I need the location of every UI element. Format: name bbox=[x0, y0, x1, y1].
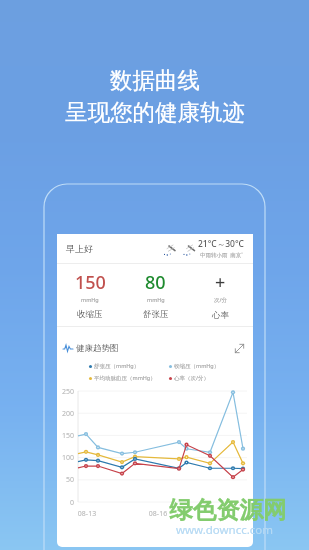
staticText: 250 bbox=[57, 387, 74, 397]
staticText: 50 bbox=[57, 475, 74, 485]
staticText: 健康趋势图 bbox=[76, 343, 119, 354]
staticText: www.downcc.com bbox=[176, 522, 274, 538]
staticText: 心率 bbox=[212, 310, 229, 321]
staticText: 平均动脉血压（mmHg） bbox=[94, 374, 156, 382]
staticText: 收缩压（mmHg） bbox=[174, 362, 220, 370]
staticText: 150 bbox=[75, 270, 106, 295]
button[interactable]: 早上好 bbox=[66, 234, 245, 263]
button[interactable]: Expand chart bbox=[233, 342, 246, 355]
staticText: 100 bbox=[57, 453, 74, 463]
staticText: 心率（次/分） bbox=[174, 374, 210, 382]
staticText: 21°C～30°C bbox=[198, 238, 245, 250]
staticText: mmHg bbox=[147, 296, 165, 303]
staticText: 收缩压 bbox=[77, 309, 103, 320]
staticText: 早上好 bbox=[66, 243, 93, 254]
button[interactable]: + bbox=[188, 264, 253, 321]
staticText: 中雨转小雨 南京˅ bbox=[200, 251, 243, 259]
staticText: 舒张压 bbox=[143, 309, 169, 320]
staticText: 08-16 bbox=[143, 509, 173, 519]
staticText: 0 bbox=[57, 498, 74, 508]
staticText: mmHg bbox=[81, 296, 99, 303]
staticText: 舒张压（mmHg） bbox=[94, 362, 140, 370]
staticText: 200 bbox=[57, 409, 74, 419]
staticText: 80 bbox=[145, 270, 166, 295]
button[interactable]: 80 bbox=[123, 264, 188, 320]
staticText: + bbox=[215, 270, 226, 295]
button[interactable]: 150 bbox=[57, 264, 123, 320]
staticText: 150 bbox=[57, 431, 74, 441]
staticText: 绿色资源网 bbox=[169, 495, 287, 525]
staticText: 数据曲线 bbox=[110, 66, 200, 94]
staticText: 呈现您的健康轨迹 bbox=[65, 98, 245, 126]
staticText: 08-13 bbox=[72, 509, 102, 519]
staticText: 次/分 bbox=[214, 296, 228, 304]
